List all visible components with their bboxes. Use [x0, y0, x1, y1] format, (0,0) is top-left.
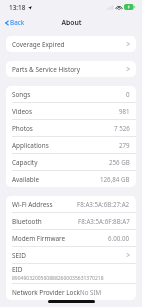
- staticText: 7 526: [114, 124, 130, 132]
- staticText: No SIM restrictions: [80, 288, 130, 296]
- staticText: 6.00.00: [108, 234, 130, 242]
- staticText: 279: [119, 141, 130, 149]
- staticText: Wi-Fi Address: [12, 200, 53, 209]
- button[interactable]: Network Provider Lock: [6, 284, 136, 300]
- button[interactable]: Modem Firmware: [6, 230, 136, 246]
- other: Open: [126, 252, 130, 258]
- staticText: Coverage Expired: [12, 40, 65, 49]
- button[interactable]: Videos: [6, 103, 136, 119]
- staticText: Parts & Service History: [12, 65, 80, 74]
- staticText: Available: [12, 175, 39, 184]
- staticText: Network Provider Lock: [12, 288, 80, 297]
- button[interactable]: SEID: [6, 247, 136, 263]
- button[interactable]: Bluetooth: [6, 213, 136, 229]
- staticText: 89049032005008882600035631370218: [12, 275, 104, 282]
- staticText: 256 GB: [109, 158, 130, 166]
- button[interactable]: Wi-Fi Address: [6, 196, 136, 212]
- button[interactable]: Photos: [6, 120, 136, 136]
- staticText: 0: [126, 90, 130, 98]
- staticText: Modem Firmware: [12, 234, 66, 243]
- staticText: Photos: [12, 124, 33, 133]
- staticText: Videos: [12, 107, 32, 116]
- staticText: 13:18: [9, 3, 26, 12]
- staticText: About: [61, 18, 82, 27]
- button[interactable]: Capacity: [6, 154, 136, 170]
- button[interactable]: Parts & Service History: [6, 61, 136, 77]
- staticText: Back: [10, 18, 25, 27]
- button[interactable]: EID: [6, 264, 136, 283]
- staticText: F8:A3:5A:6B:27:A2: [77, 200, 130, 208]
- staticText: Capacity: [12, 158, 38, 167]
- staticText: Songs: [12, 90, 31, 99]
- staticText: SEID: [12, 251, 26, 260]
- button[interactable]: Available: [6, 171, 136, 187]
- staticText: Bluetooth: [12, 217, 42, 226]
- other: Open: [126, 41, 130, 47]
- button[interactable]: Songs: [6, 86, 136, 102]
- staticText: 126,84 GB: [100, 175, 130, 183]
- button[interactable]: Applications: [6, 137, 136, 153]
- staticText: F8:A3:5A:6F:8B:A7: [78, 217, 130, 225]
- button[interactable]: Coverage Expired: [6, 36, 136, 52]
- staticText: EID: [12, 265, 23, 274]
- staticText: Applications: [12, 141, 49, 150]
- staticText: 981: [119, 107, 130, 115]
- button[interactable]: Back: [0, 15, 29, 30]
- other: Open: [126, 66, 130, 72]
